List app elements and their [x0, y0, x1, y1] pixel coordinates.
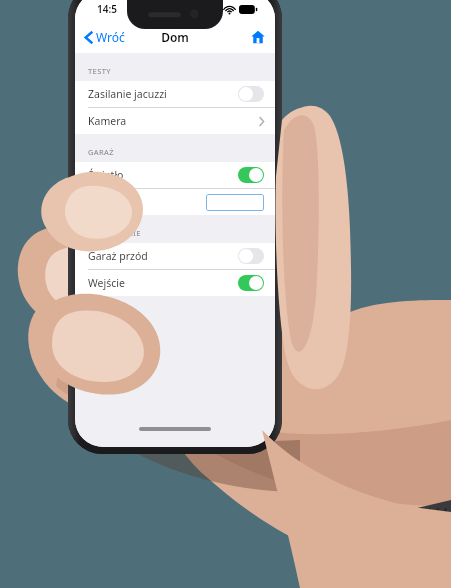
staticText: GARAŻ	[88, 147, 114, 157]
staticText: Dom	[161, 29, 189, 45]
other: Open Kamera	[259, 117, 264, 126]
button[interactable]	[238, 275, 264, 291]
staticText: Garaż przód	[88, 249, 148, 263]
button[interactable]: Zasilanie jacuzzi	[75, 81, 275, 108]
button[interactable]: Wejście	[75, 270, 275, 296]
staticText: Wejście	[88, 276, 125, 290]
button[interactable]: Home	[241, 24, 275, 50]
staticText: TESTY	[88, 66, 111, 76]
button[interactable]: Garaż przód	[75, 243, 275, 270]
staticText: OŚWIETLENIE	[88, 228, 141, 238]
button[interactable]	[238, 167, 264, 183]
staticText: Kamera	[88, 114, 127, 128]
button[interactable]: Otwórz bramę	[206, 194, 264, 211]
button[interactable]	[238, 248, 264, 264]
staticText: Wróć	[96, 29, 125, 45]
button[interactable]: Brama	[75, 189, 275, 215]
button[interactable]: Światło	[75, 162, 275, 189]
button[interactable]	[238, 86, 264, 102]
staticText: Zasilanie jacuzzi	[88, 87, 167, 101]
staticText: 14:5	[97, 2, 117, 16]
button[interactable]: Kamera	[75, 108, 275, 134]
button[interactable]: Wróć	[75, 25, 133, 49]
staticText: Światło	[88, 168, 124, 182]
